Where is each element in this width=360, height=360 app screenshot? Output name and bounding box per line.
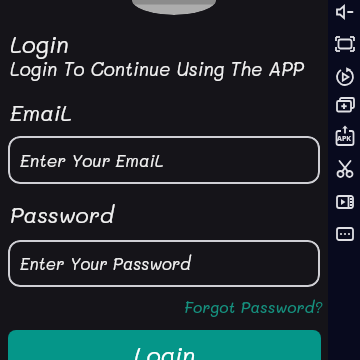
staticText: Forgot Password?: [184, 297, 323, 317]
staticText: Login To Continue Using The APP: [10, 57, 304, 81]
button[interactable]: Login: [8, 330, 321, 360]
button[interactable]: Enter Your Password: [8, 240, 320, 287]
staticText: Enter Your Password: [20, 253, 191, 274]
staticText: Enter Your EmaiL: [20, 149, 164, 171]
staticText: APK: [337, 134, 351, 144]
staticText: Password: [10, 200, 114, 229]
staticText: Login: [134, 339, 196, 360]
staticText: EmaiL: [10, 98, 73, 127]
button[interactable]: Forgot Password?: [8, 297, 323, 317]
staticText: Login: [10, 29, 69, 59]
button[interactable]: Enter Your EmaiL: [8, 136, 320, 184]
